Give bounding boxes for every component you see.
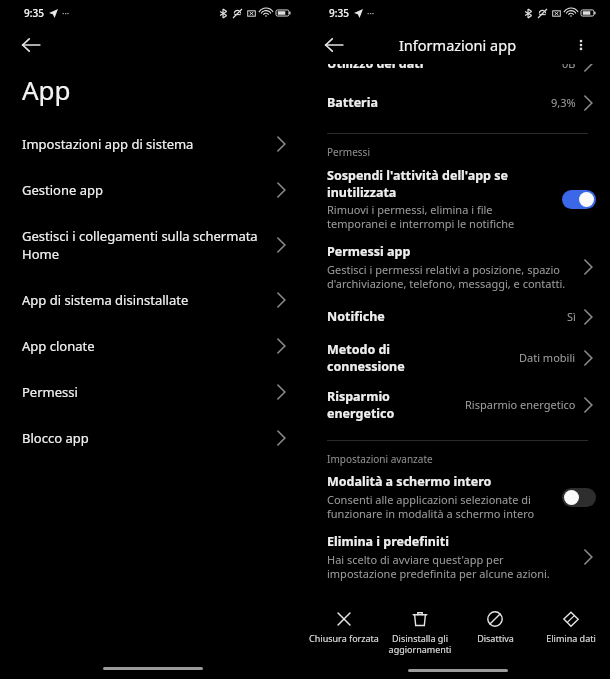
- button[interactable]: Disattiva: [459, 606, 531, 648]
- button[interactable]: Permessi app: [305, 239, 610, 300]
- staticText: 9:35: [24, 6, 44, 20]
- staticText: Informazioni app: [349, 35, 566, 55]
- button[interactable]: Risparmio energetico: [305, 382, 610, 431]
- staticText: Sì: [567, 309, 576, 324]
- staticText: Modalità a schermo intero: [327, 473, 492, 490]
- staticText: Disinstalla gli aggiornamenti: [384, 632, 456, 655]
- button[interactable]: Modalità a schermo intero: [305, 471, 610, 529]
- staticText: Notifiche: [327, 308, 385, 325]
- staticText: ···: [367, 7, 375, 19]
- button[interactable]: App di sistema disinstallate: [0, 277, 305, 323]
- staticText: App clonate: [22, 337, 261, 355]
- button[interactable]: Batteria: [305, 81, 610, 125]
- button[interactable]: Disinstalla gli aggiornamenti: [384, 606, 456, 659]
- button[interactable]: Gestione app: [0, 167, 305, 213]
- staticText: 9,3%: [551, 95, 576, 110]
- button[interactable]: Sospendi l'attività dell'app se inutiliz…: [305, 165, 610, 239]
- staticText: Gestione app: [22, 181, 261, 199]
- staticText: Consenti alle applicazioni selezionate d…: [327, 492, 554, 521]
- button[interactable]: Toggle off: [562, 488, 596, 507]
- staticText: Elimina i predefiniti: [327, 533, 449, 550]
- staticText: Gestisci i collegamenti sulla schermata …: [22, 227, 261, 263]
- button[interactable]: Gestisci i collegamenti sulla schermata …: [0, 213, 305, 277]
- button[interactable]: Blocco app: [0, 415, 305, 461]
- staticText: Hai scelto di avviare quest'app per impo…: [327, 552, 572, 581]
- button[interactable]: Metodo di connessione: [305, 335, 610, 382]
- button[interactable]: App clonate: [0, 323, 305, 369]
- staticText: Chiusura forzata: [309, 632, 379, 644]
- staticText: Utilizzo dei dati: [327, 64, 562, 72]
- button[interactable]: Elimina dati: [535, 606, 607, 648]
- staticText: Permessi: [327, 145, 370, 159]
- staticText: Permessi: [22, 383, 261, 401]
- staticText: Dati mobili: [519, 350, 576, 365]
- staticText: 0B: [562, 64, 576, 71]
- button[interactable]: Back: [319, 30, 349, 60]
- staticText: App di sistema disinstallate: [22, 291, 261, 309]
- staticText: Risparmio energetico: [327, 388, 395, 421]
- staticText: Risparmio energetico: [465, 397, 576, 412]
- staticText: Batteria: [327, 94, 378, 111]
- button[interactable]: Impostazioni app di sistema: [0, 121, 305, 167]
- staticText: Blocco app: [22, 429, 261, 447]
- button[interactable]: Chiusura forzata: [308, 606, 380, 648]
- staticText: Sospendi l'attività dell'app se inutiliz…: [327, 167, 554, 200]
- staticText: Impostazioni app di sistema: [22, 135, 261, 153]
- button[interactable]: Elimina i predefiniti: [305, 529, 610, 589]
- button[interactable]: More options: [566, 30, 596, 60]
- staticText: Impostazioni avanzate: [327, 452, 433, 466]
- button[interactable]: Permessi: [0, 369, 305, 415]
- button[interactable]: Notifiche: [305, 300, 610, 335]
- button[interactable]: Toggle on: [562, 190, 596, 209]
- staticText: Rimuovi i permessi, elimina i file tempo…: [327, 202, 554, 231]
- staticText: Elimina dati: [546, 632, 596, 644]
- staticText: ···: [62, 7, 70, 19]
- staticText: Gestisci i permessi relativi a posizione…: [327, 262, 572, 291]
- staticText: 9:35: [329, 6, 349, 20]
- button[interactable]: Back: [14, 28, 48, 62]
- staticText: Permessi app: [327, 243, 411, 260]
- staticText: Disattiva: [477, 632, 514, 644]
- staticText: Metodo di connessione: [327, 341, 405, 374]
- staticText: App: [22, 72, 71, 107]
